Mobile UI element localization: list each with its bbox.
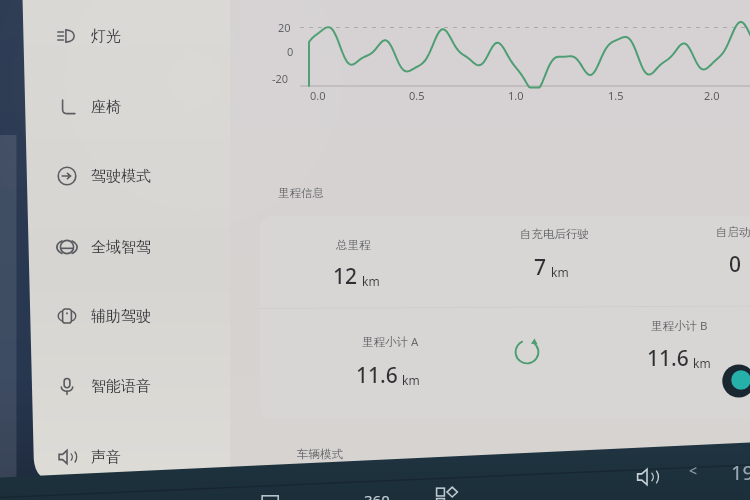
staticText: 1.0 bbox=[508, 88, 524, 103]
staticText: 1.5 bbox=[608, 88, 624, 103]
button[interactable]: 辅助驾驶 bbox=[56, 295, 216, 337]
staticText: 车辆模式 bbox=[297, 447, 343, 461]
staticText: 驾驶模式 bbox=[91, 167, 151, 186]
staticText: km bbox=[693, 355, 711, 371]
button[interactable]: 驾驶模式 bbox=[56, 155, 216, 197]
staticText: 19 bbox=[731, 459, 750, 486]
staticText: 0 bbox=[287, 44, 294, 59]
staticText: 20 bbox=[278, 20, 291, 35]
staticText: 里程小计 A bbox=[362, 334, 419, 350]
staticText: 座椅 bbox=[91, 98, 121, 117]
staticText: 里程信息 bbox=[278, 186, 324, 200]
staticText: 11.6 bbox=[356, 361, 398, 390]
staticText: 11.6 bbox=[647, 344, 689, 373]
staticText: km bbox=[551, 264, 569, 280]
staticText: < bbox=[689, 461, 698, 480]
staticText: 360 bbox=[364, 490, 390, 500]
staticText: 0 bbox=[729, 250, 742, 279]
button[interactable]: Reset trip meter bbox=[508, 333, 546, 371]
staticText: km bbox=[402, 372, 420, 388]
staticText: 声音 bbox=[91, 448, 121, 467]
staticText: 2.0 bbox=[704, 88, 720, 103]
staticText: 12 bbox=[333, 262, 358, 291]
staticText: 0.0 bbox=[310, 88, 326, 103]
staticText: 自启动 bbox=[716, 225, 750, 239]
staticText: 0.5 bbox=[409, 88, 425, 103]
staticText: 灯光 bbox=[91, 27, 121, 46]
staticText: 智能语音 bbox=[91, 377, 151, 396]
staticText: 全域智驾 bbox=[91, 238, 151, 257]
staticText: km bbox=[362, 273, 380, 289]
button[interactable]: 智能语音 bbox=[56, 365, 216, 407]
staticText: 自充电后行驶 bbox=[520, 227, 589, 241]
button[interactable]: 全域智驾 bbox=[56, 226, 216, 268]
button[interactable]: 座椅 bbox=[56, 86, 216, 128]
button[interactable]: 灯光 bbox=[56, 15, 216, 57]
staticText: 辅助驾驶 bbox=[91, 307, 151, 326]
button[interactable]: 声音 bbox=[56, 436, 216, 478]
staticText: 里程小计 B bbox=[651, 318, 708, 334]
staticText: -20 bbox=[272, 71, 289, 86]
button[interactable]: Apps bbox=[434, 484, 460, 500]
staticText: 7 bbox=[534, 253, 547, 282]
button[interactable]: Volume bbox=[634, 464, 660, 490]
staticText: 总里程 bbox=[336, 238, 371, 252]
button[interactable]: Camera bbox=[259, 488, 285, 500]
